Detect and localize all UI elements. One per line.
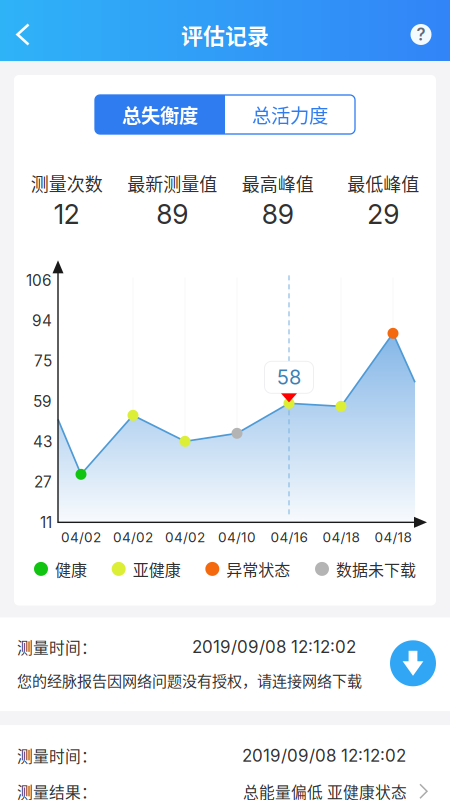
button[interactable]: 总失衡度 [95, 95, 225, 134]
staticText: 总活力度 [252, 100, 328, 128]
staticText: 测量时间： [17, 744, 97, 767]
staticText: 43 [33, 432, 52, 451]
staticText: 75 [34, 352, 52, 370]
staticText: 2019/09/08 12:12:02 [242, 745, 406, 766]
staticText: 12 [54, 198, 80, 230]
staticText: 测量结果： [17, 780, 97, 800]
staticText: 最新测量值 [127, 170, 217, 196]
staticText: 11 [40, 513, 52, 532]
staticText: 亚健康 [133, 557, 181, 580]
staticText: 89 [156, 198, 188, 230]
staticText: 评估记录 [181, 19, 269, 50]
staticText: 异常状态 [226, 557, 290, 580]
staticText: 总能量偏低 亚健康状态 [243, 780, 407, 800]
staticText: 04/10 [218, 529, 256, 546]
staticText: 测量时间： [17, 635, 97, 658]
button[interactable]: Help [401, 0, 450, 61]
staticText: 测量次数 [31, 170, 103, 196]
button[interactable]: Back [0, 0, 49, 61]
staticText: 04/02 [113, 529, 153, 546]
staticText: 29 [367, 198, 399, 230]
button[interactable]: 总活力度 [225, 95, 355, 134]
staticText: 2019/09/08 12:12:02 [192, 637, 356, 657]
staticText: 最低峰值 [347, 170, 419, 196]
staticText: 89 [262, 198, 294, 230]
staticText: 04/18 [322, 529, 359, 546]
staticText: 最高峰值 [242, 170, 314, 196]
staticText: 数据未下载 [336, 557, 416, 580]
staticText: 94 [32, 311, 52, 330]
staticText: 04/18 [374, 529, 411, 546]
staticText: 106 [26, 271, 52, 290]
staticText: 健康 [55, 557, 87, 580]
staticText: 27 [34, 473, 52, 491]
staticText: 58 [277, 365, 301, 389]
staticText: 59 [33, 392, 52, 411]
staticText: ? [416, 24, 425, 45]
staticText: 总失衡度 [122, 100, 198, 128]
staticText: 04/02 [165, 529, 205, 546]
staticText: 您的经脉报告因网络问题没有授权，请连接网络下载 [17, 669, 362, 691]
button[interactable]: 测量时间： [0, 725, 450, 800]
staticText: 04/16 [270, 529, 307, 546]
button[interactable]: 测量时间： [0, 617, 450, 711]
staticText: 04/02 [61, 529, 101, 546]
